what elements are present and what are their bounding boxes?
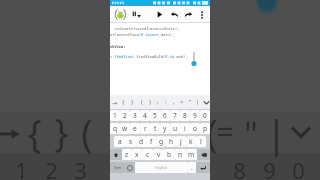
button[interactable]: Backspace — [197, 149, 210, 160]
button[interactable]: Language — [125, 162, 135, 173]
button[interactable]: Enter — [196, 162, 210, 173]
staticText: 1 — [113, 111, 117, 120]
button[interactable]: x — [132, 149, 142, 160]
button[interactable]: 4 — [140, 110, 150, 121]
button[interactable]: s — [125, 136, 136, 147]
staticText: " — [244, 111, 258, 157]
staticText: } — [131, 98, 134, 106]
staticText: etContentView(R.layout.main); — [110, 32, 175, 37]
button[interactable]: r — [140, 123, 150, 134]
staticText: q — [113, 124, 118, 133]
button[interactable]: h — [166, 136, 176, 147]
button[interactable]: l — [196, 136, 206, 147]
staticText: b — [167, 150, 172, 159]
staticText: → — [112, 99, 118, 106]
button[interactable]: : — [162, 95, 170, 109]
staticText: = (WebView) findViewById(R.id.web); — [110, 54, 188, 59]
button[interactable]: Project — [130, 6, 143, 23]
button[interactable]: = — [178, 95, 186, 109]
staticText: t — [154, 124, 157, 133]
staticText: : — [165, 98, 167, 106]
staticText: d — [139, 137, 144, 146]
staticText: 0 — [203, 111, 207, 120]
staticText: 5 — [153, 111, 157, 120]
button[interactable]: z — [122, 149, 132, 160]
button[interactable]: o — [190, 123, 200, 134]
button[interactable]: j — [176, 136, 186, 147]
staticText: l — [200, 137, 202, 146]
button[interactable]: p — [200, 123, 210, 134]
button[interactable]: y — [160, 123, 170, 134]
staticText: 2 — [45, 155, 58, 180]
button[interactable]: | — [194, 95, 202, 109]
button[interactable]: v — [153, 149, 164, 160]
staticText: { — [27, 106, 42, 158]
button[interactable]: 1 — [110, 110, 120, 121]
staticText: ; — [157, 98, 159, 106]
button[interactable]: 0 — [200, 110, 210, 121]
button[interactable]: ; — [154, 95, 162, 109]
button[interactable]: , — [170, 95, 178, 109]
button[interactable]: Redo — [182, 6, 195, 23]
button[interactable]: 2 — [120, 110, 130, 121]
staticText: e — [133, 124, 137, 133]
button[interactable]: Undo — [168, 6, 181, 23]
button[interactable]: Hide keyboard — [202, 95, 210, 109]
staticText: 1 — [15, 155, 28, 180]
button[interactable]: u — [170, 123, 180, 134]
button[interactable]: 9 — [190, 110, 200, 121]
button[interactable]: 5 — [150, 110, 160, 121]
staticText: = — [216, 111, 234, 152]
button[interactable]: a — [114, 136, 125, 147]
staticText: k — [189, 137, 193, 146]
button[interactable]: k — [186, 136, 196, 147]
button[interactable]: . — [188, 162, 196, 173]
staticText: ( — [206, 106, 218, 158]
button[interactable]: f — [146, 136, 156, 147]
button[interactable]: " — [186, 95, 194, 109]
staticText: x — [135, 150, 139, 159]
staticText: } — [54, 105, 69, 157]
button[interactable]: q — [110, 123, 120, 134]
staticText: " — [189, 98, 192, 106]
button[interactable]: i — [180, 123, 190, 134]
button[interactable]: Run — [153, 6, 166, 23]
button[interactable]: w — [120, 123, 130, 134]
button[interactable]: AIDE — [112, 6, 129, 23]
button[interactable]: m — [186, 149, 197, 160]
staticText: Sym — [114, 165, 122, 170]
button[interactable]: d — [136, 136, 146, 147]
staticText: p — [203, 124, 208, 133]
button[interactable]: 7 — [170, 110, 180, 121]
button[interactable]: More options — [196, 6, 208, 23]
button[interactable]: b — [164, 149, 175, 160]
staticText: ) — [149, 98, 151, 106]
button[interactable]: 6 — [160, 110, 170, 121]
staticText: 8 — [183, 111, 187, 120]
staticText: 9 — [193, 111, 197, 120]
staticText: 6 — [163, 111, 167, 120]
button[interactable]: Sym — [110, 162, 125, 173]
button[interactable]: { — [119, 95, 128, 109]
button[interactable]: → — [110, 95, 119, 109]
button[interactable]: 3 — [130, 110, 140, 121]
button[interactable]: c — [142, 149, 153, 160]
staticText: y — [163, 124, 167, 133]
staticText: 2 — [123, 111, 127, 120]
button[interactable]: Space — [135, 162, 188, 173]
button[interactable]: t — [150, 123, 160, 134]
button[interactable]: ( — [137, 95, 146, 109]
staticText: r — [144, 124, 147, 133]
button[interactable]: e — [130, 123, 140, 134]
button[interactable]: } — [128, 95, 137, 109]
staticText: g — [159, 137, 164, 146]
staticText: = — [180, 98, 184, 106]
button[interactable]: Shift — [110, 149, 122, 160]
staticText: n — [178, 150, 183, 159]
button[interactable]: 8 — [180, 110, 190, 121]
staticText: 0 — [292, 155, 305, 180]
button[interactable]: ) — [146, 95, 154, 109]
staticText: { — [122, 98, 125, 106]
button[interactable]: g — [156, 136, 166, 147]
button[interactable]: n — [175, 149, 186, 160]
